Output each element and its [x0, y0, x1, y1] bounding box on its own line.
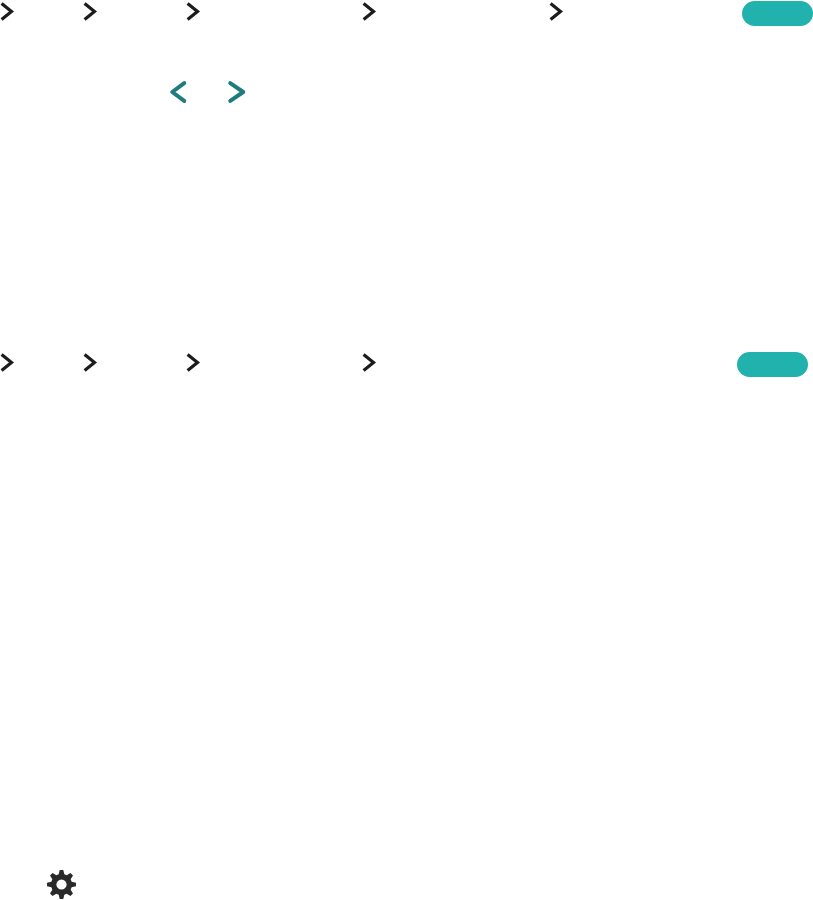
button[interactable]: Secondary action — [737, 352, 808, 377]
button[interactable]: Expand section 3 — [185, 1, 201, 22]
button[interactable]: Primary action — [742, 1, 813, 26]
button[interactable]: Expand section 5 — [548, 1, 564, 22]
button[interactable]: Settings — [46, 869, 77, 900]
button[interactable]: Expand row 2 section 4 — [361, 352, 377, 373]
button[interactable]: Expand row 2 section 3 — [185, 352, 201, 373]
button[interactable]: Expand section 2 — [82, 1, 98, 22]
button[interactable]: Next page — [224, 78, 250, 106]
button[interactable]: Expand row 2 section 1 — [0, 352, 15, 373]
button[interactable]: Expand section 4 — [361, 1, 377, 22]
button[interactable]: Expand row 2 section 2 — [82, 352, 98, 373]
button[interactable]: Expand section 1 — [0, 1, 15, 22]
button[interactable]: Previous page — [166, 78, 190, 106]
